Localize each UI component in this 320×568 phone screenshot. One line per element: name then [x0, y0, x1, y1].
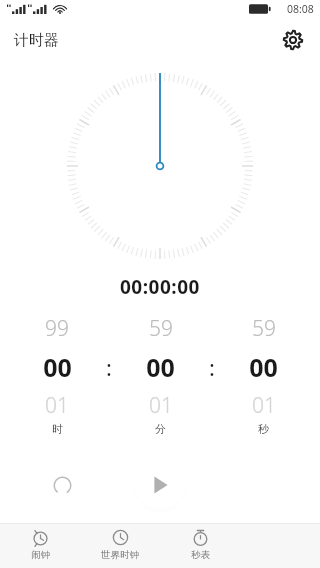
staticText: 分 — [155, 422, 166, 436]
button[interactable]: Reset — [42, 465, 82, 505]
staticText: 01 — [252, 391, 276, 420]
button[interactable]: Start — [135, 460, 185, 510]
staticText: 99 — [45, 314, 69, 343]
staticText: 时 — [52, 422, 63, 436]
staticText: 00 — [146, 350, 175, 384]
staticText: 秒表 — [191, 549, 210, 561]
staticText: 世界时钟 — [101, 549, 139, 561]
staticText: 01 — [45, 391, 69, 420]
button[interactable]: 秒表 — [160, 524, 240, 568]
staticText: 08:08 — [287, 2, 314, 16]
staticText: : — [106, 352, 112, 382]
staticText: 01 — [149, 391, 173, 420]
staticText: 59 — [149, 314, 173, 343]
staticText: 00 — [249, 350, 278, 384]
staticText: 计时器 — [14, 31, 59, 50]
button[interactable]: 59 — [118, 314, 203, 420]
staticText: 秒 — [258, 422, 269, 436]
staticText: 00 — [43, 350, 72, 384]
button[interactable]: 59 — [221, 314, 306, 420]
button[interactable]: Settings — [276, 23, 310, 57]
staticText: : — [209, 352, 215, 382]
button[interactable]: 闹钟 — [0, 524, 80, 568]
button[interactable]: 世界时钟 — [80, 524, 160, 568]
staticText: 00:00:00 — [120, 274, 200, 300]
staticText: 59 — [252, 314, 276, 343]
button[interactable]: 99 — [14, 314, 100, 420]
staticText: 闹钟 — [31, 549, 50, 561]
